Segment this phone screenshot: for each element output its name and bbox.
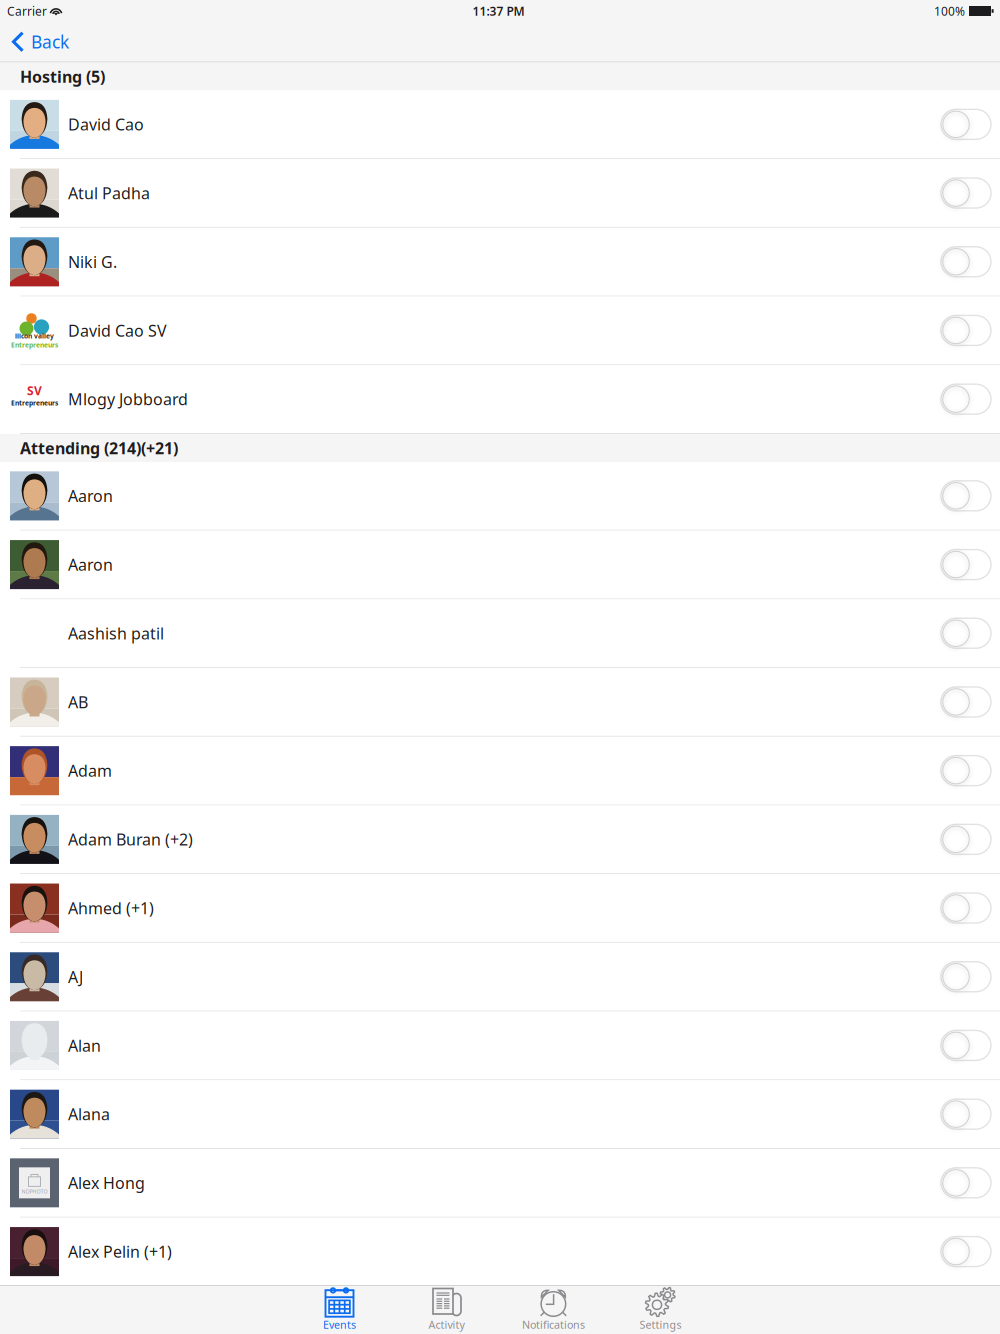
staticText: Carrier: [7, 3, 47, 19]
staticText: 100%: [934, 3, 965, 19]
button[interactable]: Aaron: [0, 462, 1000, 531]
staticText: 11:37 PM: [472, 3, 524, 19]
button[interactable]: Aaron: [0, 531, 1000, 599]
staticText: Settings: [639, 1317, 681, 1332]
button[interactable]: Events: [286, 1286, 393, 1334]
staticText: Alex Pelin (+1): [68, 1241, 172, 1262]
staticText: Attending (214)(+21): [20, 437, 178, 459]
button[interactable]: Back: [0, 22, 79, 61]
staticText: Aaron: [68, 554, 113, 575]
staticText: ilicon valley: [15, 332, 54, 340]
button[interactable]: Settings: [607, 1286, 714, 1334]
staticText: AB: [68, 691, 88, 712]
button[interactable]: Notifications: [500, 1286, 607, 1334]
staticText: Ahmed (+1): [68, 897, 154, 919]
staticText: AJ: [68, 966, 83, 987]
staticText: Hosting (5): [20, 66, 105, 87]
staticText: SV: [27, 383, 42, 399]
staticText: Alana: [68, 1103, 110, 1125]
button[interactable]: Aashish patil: [0, 599, 1000, 668]
button[interactable]: Alana: [0, 1080, 1000, 1149]
staticText: NOPHOTO: [21, 1188, 47, 1195]
staticText: Entrepreneurs: [11, 399, 58, 407]
button[interactable]: AJ: [0, 943, 1000, 1012]
button[interactable]: Adam Buran (+2): [0, 805, 1000, 874]
staticText: Alex Hong: [68, 1172, 145, 1193]
button[interactable]: Activity: [393, 1286, 500, 1334]
button[interactable]: AB: [0, 668, 1000, 737]
button[interactable]: David Cao: [0, 90, 1000, 159]
button[interactable]: Adam: [0, 737, 1000, 805]
staticText: Back: [31, 30, 69, 53]
staticText: Aashish patil: [68, 623, 164, 644]
staticText: Niki G.: [68, 251, 117, 272]
staticText: Entrepreneurs: [11, 340, 58, 349]
staticText: Activity: [428, 1317, 464, 1332]
staticText: David Cao SV: [68, 320, 167, 341]
button[interactable]: Alex Pelin (+1): [0, 1218, 1000, 1286]
staticText: Events: [323, 1317, 356, 1332]
button[interactable]: NOPHOTO: [0, 1149, 1000, 1218]
staticText: Atul Padha: [68, 182, 150, 204]
button[interactable]: Atul Padha: [0, 159, 1000, 228]
button[interactable]: ilicon valley: [0, 297, 1000, 365]
button[interactable]: Niki G.: [0, 228, 1000, 297]
staticText: Alan: [68, 1035, 101, 1056]
staticText: David Cao: [68, 114, 144, 135]
staticText: Notifications: [522, 1317, 585, 1332]
button[interactable]: Ahmed (+1): [0, 874, 1000, 943]
staticText: Adam: [68, 760, 112, 781]
staticText: Adam Buran (+2): [68, 829, 193, 850]
button[interactable]: Alan: [0, 1012, 1000, 1080]
button[interactable]: SV: [0, 365, 1000, 434]
staticText: Mlogy Jobboard: [68, 388, 188, 410]
staticText: Aaron: [68, 485, 113, 506]
